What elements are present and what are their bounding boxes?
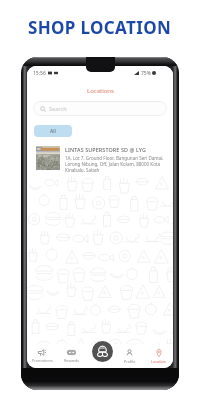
staticText: Promotions: [32, 358, 53, 363]
staticText: LINTAS SUPERSTORE SD @ LYG: [65, 146, 146, 153]
button[interactable]: Home: [92, 341, 113, 362]
button[interactable]: LINTAS SUPERSTORE SD @ LYG: [27, 142, 173, 176]
staticText: Location: [151, 359, 167, 364]
staticText: 1A, Lot 7, Ground Floor, Bangunan Seri D…: [65, 155, 164, 172]
staticText: Locations: [87, 87, 114, 95]
staticText: Rewards: [64, 358, 80, 363]
button[interactable]: All: [34, 125, 72, 137]
staticText: Search: [49, 105, 67, 113]
staticText: Profile: [124, 359, 136, 364]
button[interactable]: Promotions: [27, 344, 57, 368]
button[interactable]: Location: [144, 344, 173, 368]
staticText: 15:56: [33, 70, 46, 77]
button[interactable]: Profile: [115, 344, 144, 368]
staticText: All: [50, 128, 56, 135]
staticText: SHOP LOCATION: [28, 16, 172, 39]
staticText: 75%: [141, 70, 151, 77]
button[interactable]: Rewards: [57, 344, 86, 368]
